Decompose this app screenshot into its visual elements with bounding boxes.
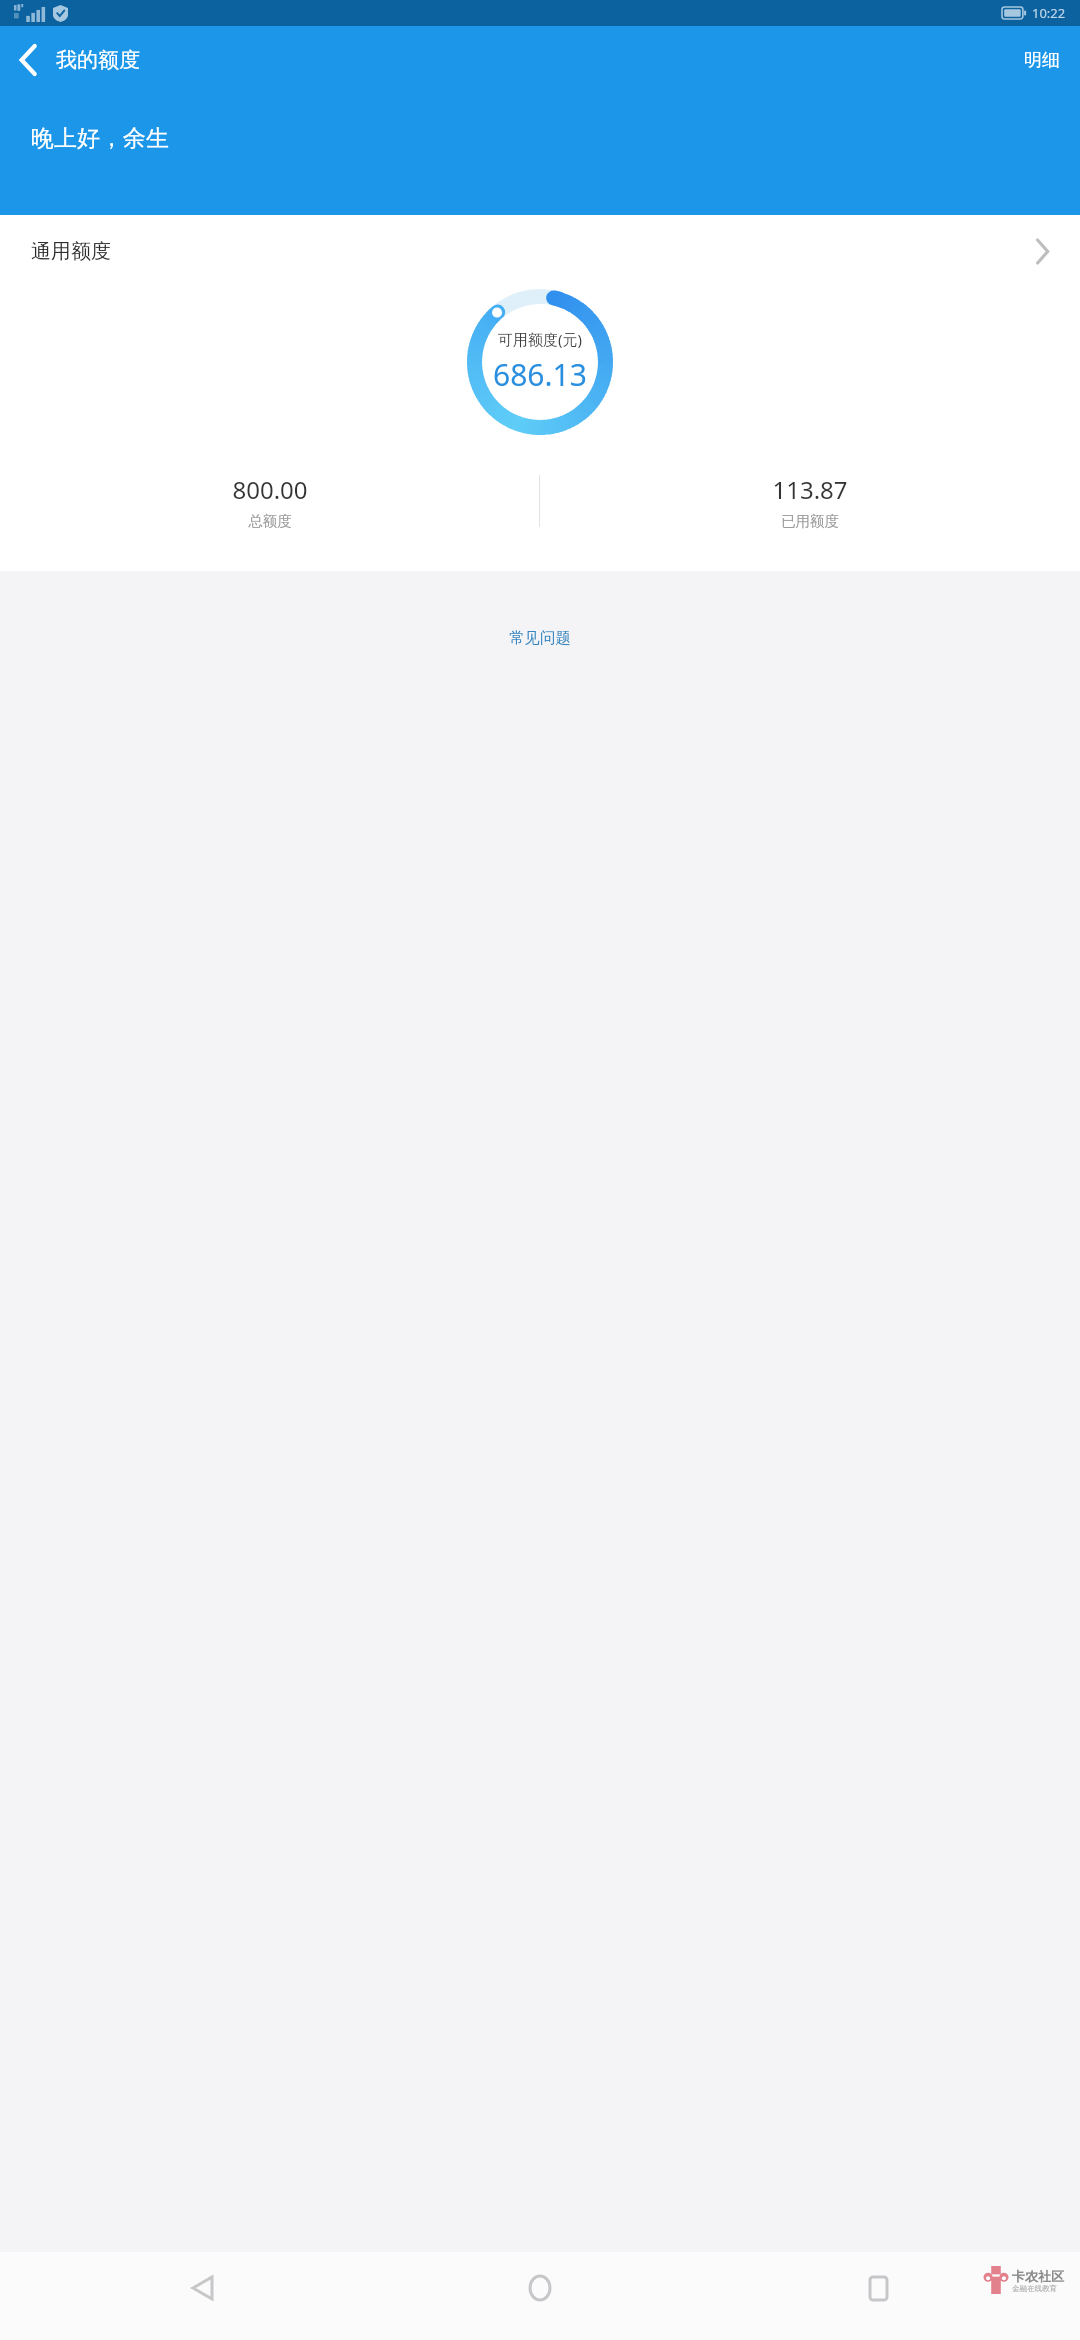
button[interactable]: 返回	[0, 32, 56, 88]
button[interactable]: 明细	[1004, 26, 1080, 94]
button[interactable]: Recents	[848, 2258, 908, 2318]
staticText: 通用额度	[31, 239, 111, 264]
staticText: 800.00	[232, 473, 308, 506]
staticText: 可用额度(元)	[498, 329, 583, 349]
staticText: 金融在线教育	[1012, 2284, 1057, 2293]
staticText: 常见问题	[509, 628, 571, 648]
staticText: 我的额度	[56, 47, 140, 73]
staticText: 明细	[1024, 49, 1060, 72]
staticText: 晚上好，余生	[31, 124, 169, 153]
staticText: 卡农社区	[1012, 2268, 1064, 2284]
button[interactable]: 常见问题	[499, 624, 581, 652]
button[interactable]: Home	[510, 2258, 570, 2318]
staticText: 10:22	[1032, 4, 1066, 22]
staticText: 已用额度	[781, 512, 839, 530]
button[interactable]: Back	[172, 2258, 232, 2318]
staticText: 113.87	[772, 473, 848, 506]
staticText: 686.13	[493, 354, 587, 395]
button[interactable]: 通用额度	[0, 215, 1080, 287]
staticText: 总额度	[248, 512, 292, 530]
